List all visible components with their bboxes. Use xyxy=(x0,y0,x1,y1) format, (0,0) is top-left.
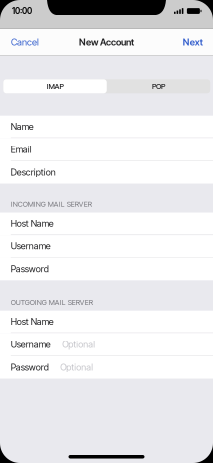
staticText: New Account xyxy=(79,36,134,48)
staticText: Password xyxy=(11,362,49,373)
staticText: Email xyxy=(11,144,32,155)
button[interactable]: IMAP xyxy=(3,79,107,93)
button[interactable]: Email xyxy=(0,138,213,161)
staticText: INCOMING MAIL SERVER xyxy=(11,200,92,208)
button[interactable]: Username xyxy=(0,333,213,356)
button[interactable]: Password xyxy=(0,356,213,378)
staticText: Host Name xyxy=(11,218,54,229)
button[interactable]: Next xyxy=(173,29,213,55)
staticText: Optional xyxy=(62,339,95,350)
button[interactable]: POP xyxy=(107,79,210,93)
button[interactable]: Host Name xyxy=(0,311,213,333)
staticText: Username xyxy=(11,339,51,350)
staticText: Optional xyxy=(60,362,93,373)
button[interactable]: Cancel xyxy=(0,29,49,55)
staticText: Password xyxy=(11,263,49,274)
staticText: POP xyxy=(152,82,165,91)
staticText: Host Name xyxy=(11,316,54,327)
staticText: Name xyxy=(11,121,34,132)
staticText: Cancel xyxy=(11,36,39,48)
button[interactable]: Username xyxy=(0,235,213,258)
button[interactable]: Host Name xyxy=(0,212,213,235)
staticText: Username xyxy=(11,241,51,252)
staticText: OUTGOING MAIL SERVER xyxy=(11,298,93,307)
button[interactable]: Name xyxy=(0,116,213,138)
staticText: Next xyxy=(183,36,203,48)
staticText: Description xyxy=(11,167,56,178)
button[interactable]: Password xyxy=(0,258,213,280)
button[interactable]: Description xyxy=(0,161,213,183)
staticText: IMAP xyxy=(46,82,63,91)
staticText: 10:00 xyxy=(12,6,32,16)
